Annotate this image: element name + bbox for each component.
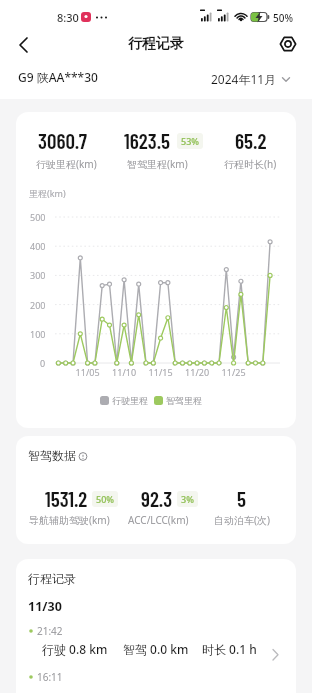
staticText: 1623.5 (124, 128, 171, 153)
staticText: 8:30 (57, 10, 79, 25)
staticText: 92.3 (141, 486, 173, 511)
staticText: 16:11 (37, 670, 63, 684)
staticText: 5 (237, 486, 246, 511)
button[interactable]: G9 陕AA***30 (0, 58, 312, 99)
staticText: 11/30 (28, 598, 62, 615)
staticText: 行驶里程(km) (36, 157, 97, 171)
button[interactable]: 2024年11月 (211, 71, 291, 87)
button[interactable] (0, 28, 34, 58)
staticText: ACC/LCC(km) (128, 513, 189, 527)
staticText: G9 陕AA***30 (18, 69, 98, 85)
staticText: 行程时长(h) (224, 157, 277, 171)
staticText: 50% (96, 493, 114, 505)
staticText: 1531.2 (45, 486, 88, 511)
staticText: 行程记录 (128, 35, 184, 53)
button[interactable]: 行驶 0.8 km (28, 641, 284, 657)
staticText: 3060.7 (38, 128, 87, 153)
staticText: 53% (181, 135, 199, 147)
staticText: 智驾 0.0 km (123, 641, 189, 657)
staticText: 智驾数据 (28, 448, 76, 463)
staticText: 行驶 0.8 km (42, 641, 108, 657)
staticText: 行程记录 (28, 571, 76, 586)
staticText: 21:42 (37, 624, 63, 638)
staticText: 导航辅助驾驶(km) (29, 513, 110, 527)
staticText: 智驾里程(km) (127, 157, 188, 171)
staticText: 自动泊车(次) (214, 513, 270, 527)
staticText: 时长 0.1 h (202, 641, 257, 657)
staticText: 65.2 (235, 128, 267, 153)
staticText: 50% (273, 11, 293, 25)
staticText: 2024年11月 (211, 71, 277, 87)
staticText: 3% (181, 493, 194, 505)
button[interactable] (273, 28, 303, 58)
